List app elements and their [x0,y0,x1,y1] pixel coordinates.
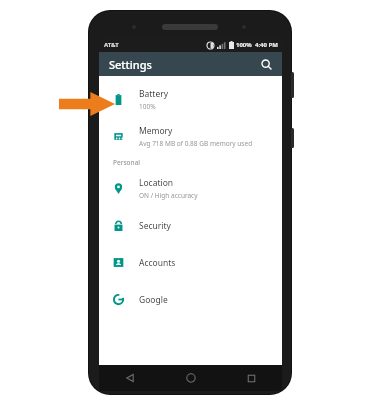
button[interactable]: Accounts [99,244,282,281]
staticText: Avg 718 MB of 0.88 GB memory used [139,139,253,148]
button[interactable]: Battery [99,81,282,118]
staticText: Accounts [139,257,176,269]
other: Pointer to Battery [59,92,115,116]
button[interactable]: Location [99,170,282,207]
staticText: Personal [113,158,141,167]
button[interactable]: Memory [99,118,282,155]
button[interactable]: Recent apps [221,365,282,391]
staticText: Memory [139,125,173,137]
staticText: AT&T [104,41,119,49]
staticText: 100% [236,41,252,49]
staticText: Settings [109,57,152,72]
staticText: Google [139,294,168,306]
button[interactable]: Security [99,207,282,244]
button[interactable]: Settings [99,52,282,76]
button[interactable]: Home [160,365,221,391]
staticText: Security [139,220,171,232]
staticText: Battery [139,88,169,100]
staticText: 100% [139,102,156,111]
staticText: ON / High accuracy [139,191,198,200]
button[interactable]: Google [99,281,282,318]
staticText: Location [139,177,174,189]
button[interactable]: Search [258,56,274,72]
button[interactable]: Back [99,365,160,391]
staticText: 4:40 PM [255,41,278,49]
